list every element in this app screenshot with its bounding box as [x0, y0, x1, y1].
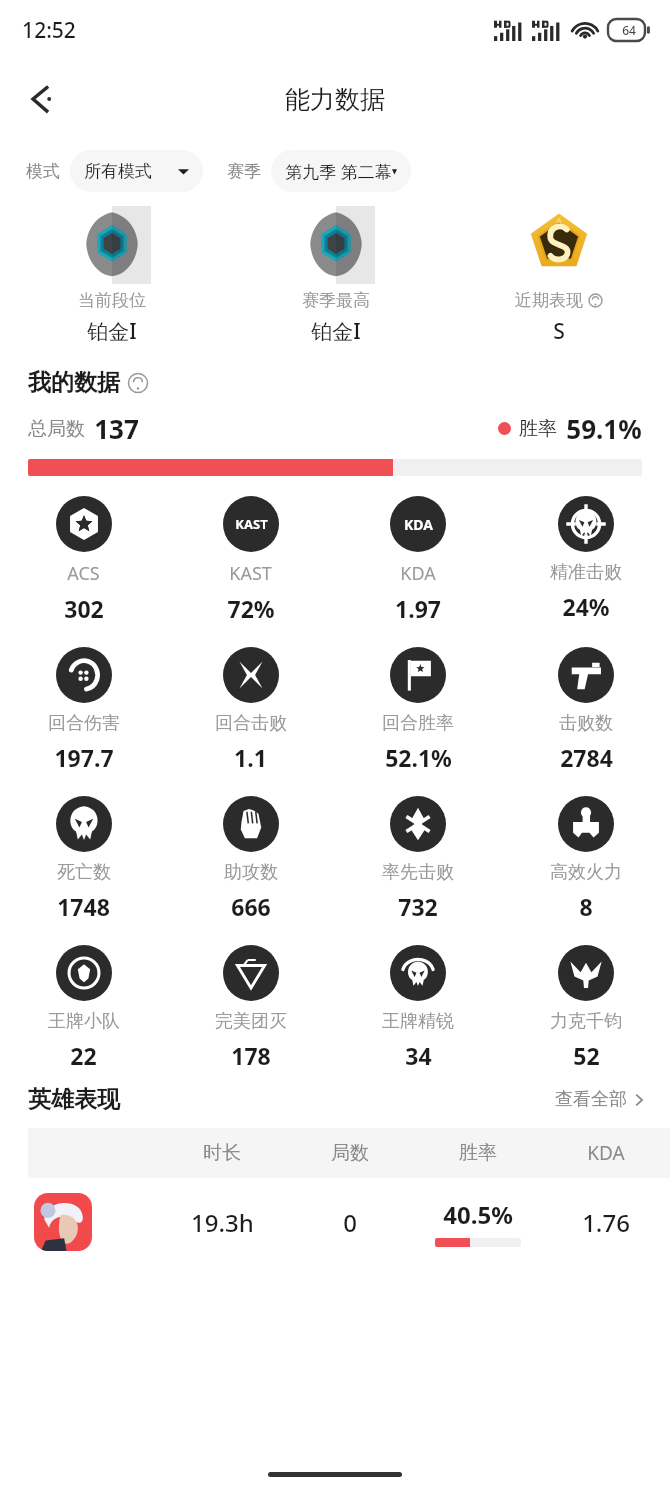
- staticText: 时长: [203, 1141, 241, 1165]
- staticText: 12:52: [22, 16, 76, 45]
- button[interactable]: 率先击败: [334, 796, 502, 922]
- staticText: 英雄表现: [28, 1085, 120, 1114]
- staticText: 铂金I: [87, 317, 137, 346]
- staticText: KDA: [400, 561, 436, 586]
- staticText: 64: [622, 22, 636, 38]
- staticText: S: [553, 317, 565, 346]
- staticText: 模式: [26, 161, 60, 182]
- staticText: 52: [573, 1040, 600, 1071]
- staticText: 王牌小队: [48, 1010, 120, 1033]
- staticText: 52.1%: [385, 742, 452, 773]
- staticText: KDA: [404, 515, 433, 534]
- staticText: 137: [94, 411, 139, 446]
- button[interactable]: Back: [12, 69, 72, 129]
- staticText: 赛季最高: [302, 290, 370, 311]
- staticText: 1748: [57, 891, 110, 922]
- staticText: KAST: [235, 515, 268, 533]
- staticText: 34: [405, 1040, 432, 1071]
- button[interactable]: 所有模式: [70, 150, 203, 192]
- button[interactable]: 19.3h: [28, 1178, 670, 1266]
- staticText: 查看全部: [555, 1088, 627, 1111]
- staticText: 击败数: [559, 712, 613, 735]
- staticText: 胜率: [519, 417, 557, 441]
- button[interactable]: Info: [127, 372, 149, 394]
- staticText: 732: [398, 891, 438, 922]
- button[interactable]: 完美团灭: [167, 945, 334, 1071]
- staticText: KAST: [229, 561, 272, 586]
- staticText: 赛季: [227, 161, 261, 182]
- staticText: 8: [579, 891, 593, 922]
- staticText: 24%: [562, 591, 610, 622]
- staticText: 302: [64, 593, 104, 624]
- staticText: 19.3h: [191, 1206, 254, 1239]
- staticText: 666: [231, 891, 271, 922]
- button[interactable]: ACS: [0, 496, 167, 624]
- staticText: 所有模式: [84, 161, 152, 182]
- staticText: KDA: [587, 1140, 625, 1166]
- staticText: 近期表现: [515, 290, 583, 311]
- button[interactable]: 王牌小队: [0, 945, 167, 1071]
- staticText: 178: [231, 1040, 271, 1071]
- staticText: 72%: [227, 593, 275, 624]
- staticText: 回合伤害: [48, 712, 120, 735]
- button[interactable]: 第九季 第二幕: [271, 150, 411, 192]
- staticText: 能力数据: [285, 84, 385, 115]
- button[interactable]: 力克千钧: [502, 945, 670, 1071]
- button[interactable]: 高效火力: [502, 796, 670, 922]
- staticText: 第九季 第二幕: [285, 160, 392, 183]
- button[interactable]: 死亡数: [0, 796, 167, 922]
- staticText: 力克千钧: [550, 1010, 622, 1033]
- staticText: 完美团灭: [215, 1010, 287, 1033]
- staticText: 40.5%: [443, 1198, 513, 1231]
- staticText: 总局数: [28, 417, 85, 441]
- button[interactable]: KDA: [334, 496, 502, 624]
- button[interactable]: 近期表现: [447, 206, 670, 346]
- button[interactable]: 英雄表现: [28, 1085, 646, 1114]
- button[interactable]: KAST: [167, 496, 334, 624]
- button[interactable]: 赛季最高: [224, 206, 447, 346]
- button[interactable]: 当前段位: [0, 206, 224, 346]
- staticText: 0: [343, 1206, 357, 1239]
- staticText: 助攻数: [224, 861, 278, 884]
- staticText: 22: [70, 1040, 97, 1071]
- button[interactable]: 回合伤害: [0, 647, 167, 773]
- staticText: 王牌精锐: [382, 1010, 454, 1033]
- staticText: 死亡数: [57, 861, 111, 884]
- staticText: 高效火力: [550, 861, 622, 884]
- staticText: 回合击败: [215, 712, 287, 735]
- staticText: 局数: [331, 1141, 369, 1165]
- button[interactable]: 王牌精锐: [334, 945, 502, 1071]
- staticText: 回合胜率: [382, 712, 454, 735]
- staticText: 59.1%: [566, 411, 642, 446]
- staticText: 精准击败: [550, 561, 622, 584]
- staticText: ACS: [67, 561, 100, 586]
- staticText: 胜率: [459, 1141, 497, 1165]
- staticText: 2784: [560, 742, 613, 773]
- staticText: 率先击败: [382, 861, 454, 884]
- staticText: 我的数据: [28, 368, 120, 397]
- button[interactable]: 回合胜率: [334, 647, 502, 773]
- staticText: 当前段位: [78, 290, 146, 311]
- staticText: 197.7: [54, 742, 114, 773]
- button[interactable]: 击败数: [502, 647, 670, 773]
- button[interactable]: 精准击败: [502, 496, 670, 622]
- staticText: 铂金I: [311, 317, 361, 346]
- button[interactable]: 助攻数: [167, 796, 334, 922]
- button[interactable]: 回合击败: [167, 647, 334, 773]
- staticText: 1.1: [234, 742, 267, 773]
- staticText: 1.76: [582, 1206, 630, 1239]
- staticText: 1.97: [395, 593, 441, 624]
